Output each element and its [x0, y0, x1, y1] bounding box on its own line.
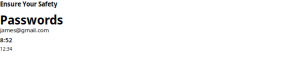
staticText: 8:52 — [0, 36, 28, 54]
staticText: james@gmail.com — [0, 26, 111, 44]
staticText: Passwords — [0, 12, 126, 44]
staticText: 12:34 — [0, 46, 36, 60]
staticText: Ensure Your Safety — [0, 0, 125, 18]
